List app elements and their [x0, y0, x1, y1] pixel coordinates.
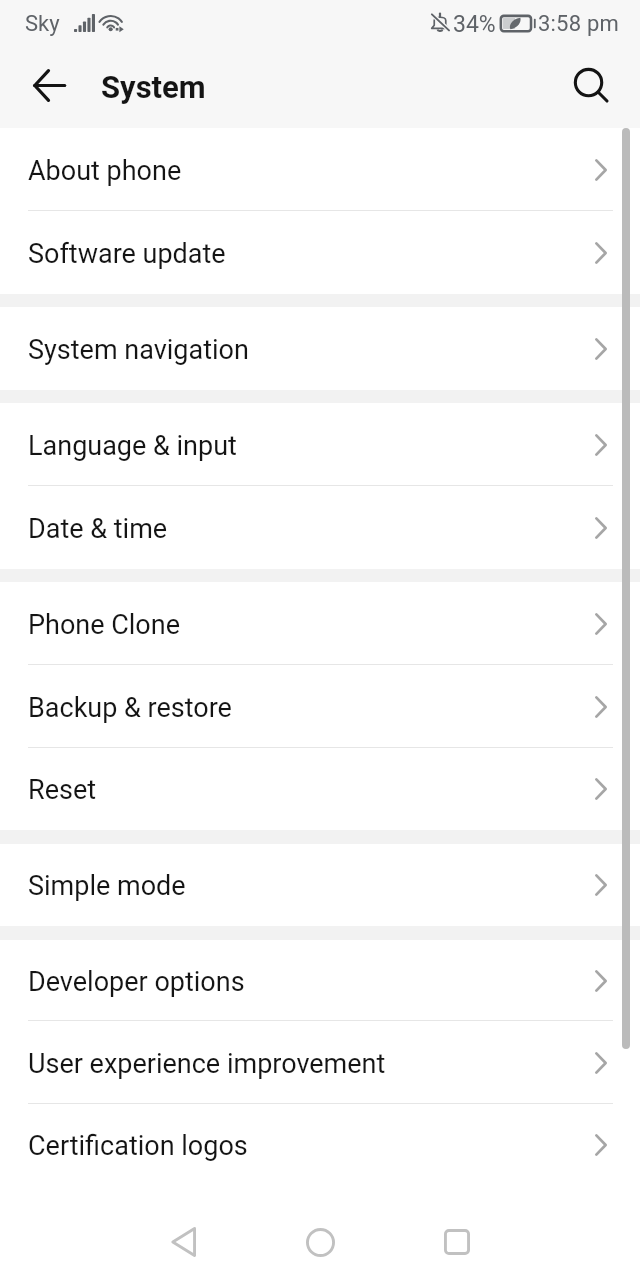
button[interactable]: Language & input — [0, 403, 640, 486]
staticText: Software update — [28, 238, 226, 270]
staticText: System — [101, 69, 206, 105]
staticText: About phone — [28, 155, 182, 187]
button[interactable]: Phone Clone — [0, 582, 640, 665]
button[interactable]: Back — [141, 1200, 225, 1280]
staticText: Reset — [28, 774, 97, 806]
staticText: Language & input — [28, 430, 237, 462]
button[interactable]: User experience improvement — [0, 1021, 640, 1104]
staticText: Developer options — [28, 966, 245, 998]
staticText: Phone Clone — [28, 609, 180, 641]
staticText: Simple mode — [28, 870, 186, 902]
staticText: Certification logos — [28, 1130, 248, 1162]
staticText: User experience improvement — [28, 1048, 386, 1080]
staticText: 34% — [453, 11, 496, 38]
button[interactable]: Backup & restore — [0, 665, 640, 748]
staticText: Backup & restore — [28, 692, 232, 724]
staticText: 3:58 pm — [538, 11, 619, 37]
button[interactable]: System navigation — [0, 307, 640, 390]
button[interactable]: Date & time — [0, 486, 640, 569]
button[interactable]: Home — [278, 1200, 362, 1280]
staticText: Date & time — [28, 513, 168, 545]
button[interactable]: Simple mode — [0, 844, 640, 926]
button[interactable]: Software update — [0, 211, 640, 294]
button[interactable]: Back — [20, 59, 78, 117]
staticText: System navigation — [28, 334, 249, 366]
button[interactable]: Search — [565, 62, 617, 114]
button[interactable]: About phone — [0, 128, 640, 211]
button[interactable]: Certification logos — [0, 1104, 640, 1185]
button[interactable]: Developer options — [0, 940, 640, 1021]
button[interactable]: Recent apps — [415, 1200, 499, 1280]
staticText: Sky — [25, 11, 60, 37]
button[interactable]: Reset — [0, 748, 640, 830]
